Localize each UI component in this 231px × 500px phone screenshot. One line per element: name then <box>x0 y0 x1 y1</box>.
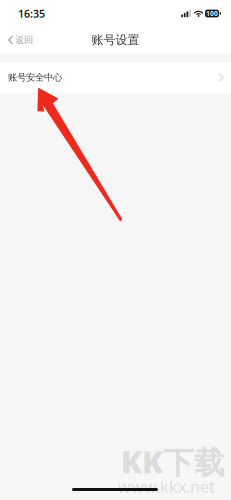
staticText: 16:35 <box>18 6 45 21</box>
button[interactable]: 账号安全中心 <box>0 62 231 93</box>
staticText: 账号设置 <box>91 33 139 47</box>
staticText: www.kkx.net <box>118 476 215 497</box>
staticText: 返回 <box>15 34 33 46</box>
staticText: 账号安全中心 <box>8 72 62 83</box>
staticText: KK下载 <box>121 441 225 482</box>
staticText: 100 <box>206 9 218 18</box>
button[interactable]: 返回 <box>0 27 41 53</box>
